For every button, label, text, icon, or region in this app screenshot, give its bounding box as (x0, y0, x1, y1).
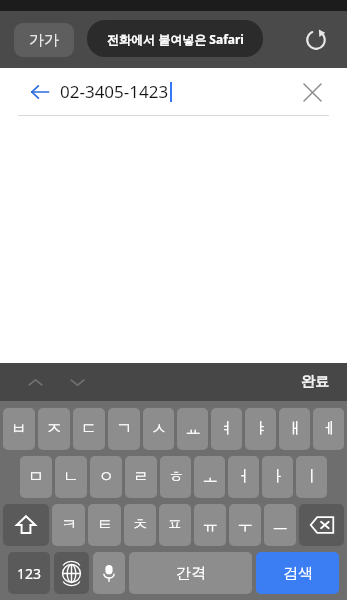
button[interactable]: Clear (295, 75, 329, 109)
button[interactable]: 123 (8, 552, 50, 594)
button[interactable]: 전화에서 붙여넣은 Safari (87, 20, 263, 57)
button[interactable]: ㅓ (228, 456, 259, 498)
button[interactable]: ㄱ (108, 408, 140, 450)
button[interactable]: ㅛ (177, 408, 208, 450)
button[interactable]: Next field (62, 367, 92, 397)
staticText: 123 (17, 564, 42, 583)
staticText: ㄱ (116, 419, 132, 439)
button[interactable]: ㅊ (124, 504, 156, 546)
button[interactable]: ㅣ (296, 456, 327, 498)
button[interactable]: Shift (3, 504, 49, 546)
staticText: ㅊ (132, 515, 148, 535)
staticText: ㅈ (46, 419, 62, 439)
staticText: ㄴ (63, 467, 79, 487)
button[interactable]: ㅂ (3, 408, 35, 450)
staticText: ㅏ (270, 467, 286, 487)
staticText: ㅛ (185, 419, 201, 439)
staticText: ㄷ (81, 419, 97, 439)
staticText: 전화에서 붙여넣은 Safari (107, 31, 244, 47)
button[interactable]: ㅗ (194, 456, 225, 498)
button[interactable]: ㅡ (264, 504, 296, 546)
staticText: 완료 (301, 373, 329, 391)
staticText: ㅕ (219, 419, 235, 439)
button[interactable]: ㄹ (125, 456, 157, 498)
button[interactable]: ㅔ (313, 408, 344, 450)
staticText: ㅔ (321, 419, 337, 439)
button[interactable]: ㅐ (279, 408, 310, 450)
button[interactable]: Dictation (93, 552, 125, 594)
button[interactable]: Reload (297, 21, 335, 59)
button[interactable]: Previous field (20, 367, 50, 397)
staticText: ㅓ (236, 467, 252, 487)
staticText: ㅑ (253, 419, 269, 439)
staticText: ㅎ (168, 467, 184, 487)
button[interactable]: ㅈ (38, 408, 70, 450)
button[interactable]: ㅋ (52, 504, 85, 546)
staticText: ㅐ (287, 419, 303, 439)
button[interactable]: ㅇ (90, 456, 122, 498)
staticText: ㅋ (61, 515, 77, 535)
staticText: ㅇ (98, 467, 114, 487)
staticText: ㅌ (97, 515, 113, 535)
button[interactable]: 가가 (14, 23, 74, 57)
staticText: ㅣ (304, 467, 320, 487)
button[interactable]: ㅎ (160, 456, 191, 498)
button[interactable]: 간격 (129, 552, 252, 594)
staticText: ㅅ (151, 419, 167, 439)
button[interactable]: 완료 (297, 369, 333, 395)
staticText: ㅡ (272, 515, 288, 535)
button[interactable]: ㄷ (73, 408, 105, 450)
staticText: ㄹ (133, 467, 149, 487)
button[interactable]: ㅕ (211, 408, 242, 450)
button[interactable]: ㅏ (262, 456, 293, 498)
button[interactable]: Change keyboard (54, 552, 89, 594)
staticText: ㅂ (11, 419, 27, 439)
staticText: ㅍ (167, 515, 183, 535)
button[interactable]: Back (22, 74, 58, 110)
button[interactable]: ㄴ (55, 456, 87, 498)
staticText: 간격 (176, 564, 206, 583)
button[interactable]: ㅑ (245, 408, 276, 450)
staticText: ㅗ (202, 467, 218, 487)
button[interactable]: ㅠ (194, 504, 226, 546)
button[interactable]: ㅅ (143, 408, 174, 450)
staticText: ㅠ (202, 515, 218, 535)
button[interactable]: ㅌ (88, 504, 121, 546)
button[interactable]: Backspace (299, 504, 344, 546)
staticText: 검색 (283, 564, 313, 583)
staticText: ㅁ (28, 467, 44, 487)
button[interactable]: ㅁ (20, 456, 52, 498)
button[interactable]: 검색 (256, 552, 339, 594)
staticText: 가가 (29, 31, 59, 50)
staticText: ㅜ (237, 515, 253, 535)
button[interactable]: ㅜ (229, 504, 261, 546)
staticText: 02-3405-1423 (60, 80, 169, 103)
button[interactable]: ㅍ (159, 504, 191, 546)
